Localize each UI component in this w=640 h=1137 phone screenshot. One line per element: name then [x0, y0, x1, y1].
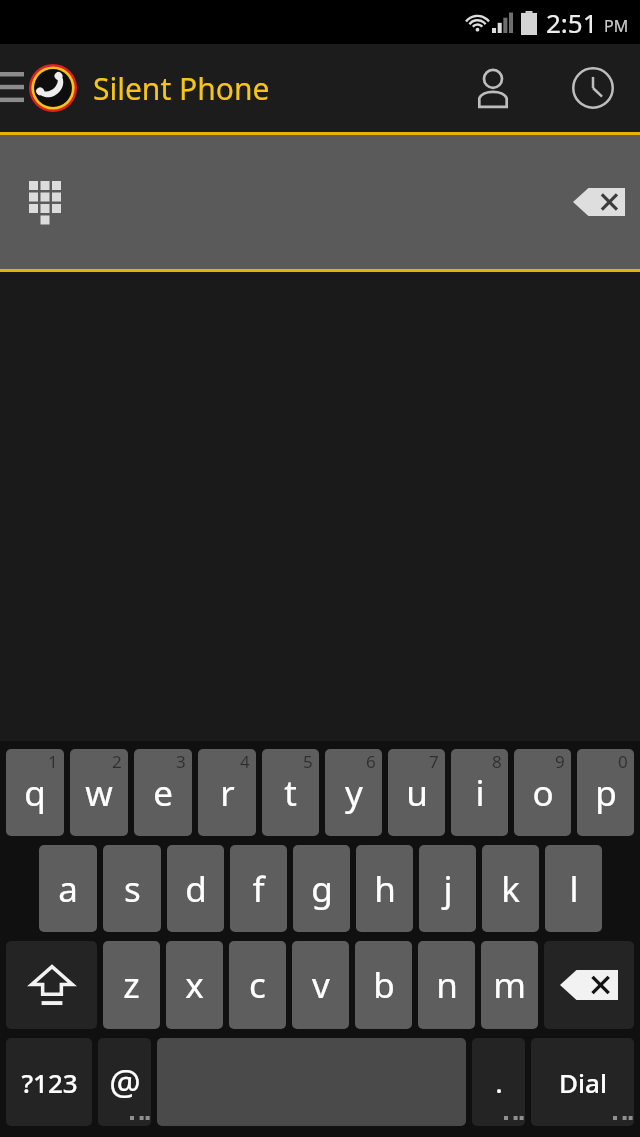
staticText: c	[249, 961, 266, 1009]
staticText: x	[185, 961, 204, 1009]
staticText: 7	[429, 750, 439, 773]
button[interactable]: Menu	[0, 44, 24, 132]
staticText: i	[475, 769, 485, 817]
staticText: g	[311, 865, 333, 913]
staticText: p	[595, 769, 617, 817]
button[interactable]: c	[229, 941, 286, 1029]
button[interactable]: b	[355, 941, 412, 1029]
staticText: ?123	[21, 1065, 78, 1100]
staticText: r	[220, 769, 235, 817]
button[interactable]: h	[356, 845, 413, 932]
staticText: v	[312, 961, 330, 1009]
staticText: f	[252, 865, 265, 913]
button[interactable]: v	[292, 941, 349, 1029]
button[interactable]: k	[482, 845, 539, 932]
button[interactable]: i	[451, 749, 508, 836]
staticText: Silent Phone	[93, 68, 270, 109]
button[interactable]: y	[325, 749, 382, 836]
staticText: t	[284, 769, 297, 817]
staticText: w	[85, 769, 113, 817]
staticText: k	[501, 865, 520, 913]
staticText: 3	[176, 750, 186, 773]
staticText: 1	[48, 750, 58, 773]
button[interactable]: Recent calls	[562, 57, 624, 119]
staticText: 5	[303, 750, 313, 773]
button[interactable]: Show dialpad	[0, 135, 640, 269]
button[interactable]: t	[262, 749, 319, 836]
staticText: 4	[240, 750, 250, 773]
staticText: n	[436, 961, 458, 1009]
button[interactable]: o	[514, 749, 571, 836]
staticText: 6	[366, 750, 376, 773]
button[interactable]: Dial	[531, 1038, 634, 1126]
button[interactable]: g	[293, 845, 350, 932]
staticText: h	[374, 865, 396, 913]
button[interactable]: q	[6, 749, 64, 836]
button[interactable]: @	[98, 1038, 151, 1126]
staticText: 2	[112, 750, 122, 773]
staticText: .	[495, 1065, 503, 1100]
staticText: z	[123, 961, 140, 1009]
button[interactable]: Shift	[6, 941, 97, 1029]
staticText: 9	[555, 750, 565, 773]
staticText: o	[532, 769, 554, 817]
button[interactable]: u	[388, 749, 445, 836]
staticText: s	[124, 865, 141, 913]
button[interactable]: a	[39, 845, 97, 932]
button[interactable]: e	[134, 749, 192, 836]
button[interactable]: l	[545, 845, 602, 932]
staticText: j	[443, 865, 453, 913]
staticText: Dial	[559, 1065, 607, 1100]
button[interactable]: m	[481, 941, 538, 1029]
button[interactable]: Backspace	[544, 941, 634, 1029]
button[interactable]: r	[198, 749, 256, 836]
button[interactable]: z	[103, 941, 160, 1029]
staticText: y	[345, 769, 363, 817]
staticText: b	[373, 961, 395, 1009]
button[interactable]: j	[419, 845, 476, 932]
staticText: d	[185, 865, 207, 913]
button[interactable]: w	[70, 749, 128, 836]
button[interactable]: Delete	[566, 176, 632, 228]
staticText: 0	[618, 750, 628, 773]
staticText: PM	[604, 15, 629, 37]
staticText: m	[493, 961, 526, 1009]
button[interactable]: n	[418, 941, 475, 1029]
staticText: l	[569, 865, 579, 913]
staticText: 2:51	[546, 5, 598, 40]
button[interactable]: s	[103, 845, 161, 932]
button[interactable]: ?123	[6, 1038, 92, 1126]
staticText: a	[58, 865, 78, 913]
button[interactable]: f	[230, 845, 287, 932]
button[interactable]: Show dialpad	[18, 175, 72, 229]
staticText: @	[109, 1058, 141, 1106]
button[interactable]: d	[167, 845, 224, 932]
button[interactable]: .	[472, 1038, 525, 1126]
staticText: 8	[492, 750, 502, 773]
staticText: q	[24, 769, 46, 817]
staticText: e	[153, 769, 173, 817]
staticText: u	[406, 769, 428, 817]
button[interactable]: Contacts	[462, 57, 524, 119]
button[interactable]: x	[166, 941, 223, 1029]
button[interactable]: p	[577, 749, 634, 836]
